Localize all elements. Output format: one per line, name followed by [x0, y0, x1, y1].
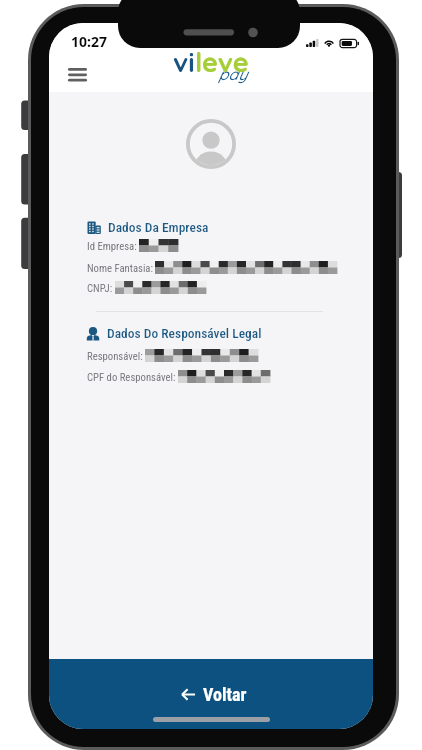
staticText: Voltar [203, 684, 247, 705]
staticText: pay [218, 64, 247, 84]
staticText: vi [173, 45, 195, 79]
staticText: leve [195, 45, 249, 79]
staticText: Dados Do Responsável Legal [107, 325, 262, 341]
staticText: Nome Fantasia: [87, 262, 153, 275]
button[interactable]: Menu [59, 57, 95, 93]
button[interactable]: Voltar [49, 659, 373, 729]
staticText: CPF do Responsável: [87, 371, 176, 384]
staticText: Responsável: [87, 350, 143, 363]
staticText: CNPJ: [87, 282, 113, 295]
staticText: Id Empresa: [87, 240, 137, 253]
staticText: Dados Da Empresa [108, 219, 209, 235]
staticText: 10:27 [71, 32, 107, 51]
